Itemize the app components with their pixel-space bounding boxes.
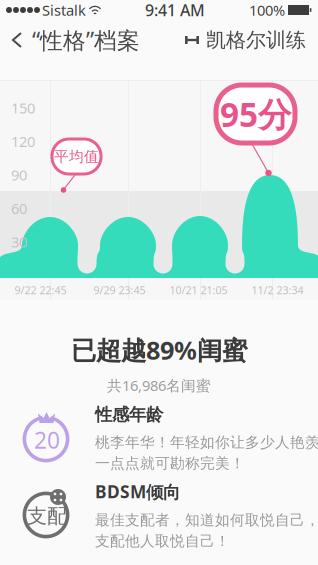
button[interactable]: 支配: [0, 480, 318, 556]
staticText: 120: [11, 131, 35, 151]
staticText: 性感年龄: [95, 404, 163, 425]
staticText: 支配: [27, 504, 67, 528]
staticText: 9/22 22:45: [14, 283, 66, 297]
staticText: 支配他人取悦自己！: [95, 532, 230, 550]
staticText: 最佳支配者，知道如何取悦自己，更深谙: [95, 511, 318, 529]
staticText: 已超越89%闺蜜: [71, 333, 247, 367]
button[interactable]: 凯格尔训练: [185, 18, 318, 62]
staticText: 20: [34, 425, 60, 455]
staticText: 10/21 21:05: [169, 283, 227, 297]
staticText: 9:41 AM: [145, 0, 205, 21]
button[interactable]: 20: [0, 404, 318, 480]
staticText: 共16,986名闺蜜: [107, 376, 211, 395]
staticText: BDSM倾向: [95, 480, 180, 503]
staticText: 30: [11, 232, 27, 251]
staticText: 100%: [249, 0, 285, 20]
staticText: 95分: [220, 92, 291, 136]
staticText: Sistalk: [42, 0, 86, 20]
button[interactable]: “性格”档案: [0, 15, 140, 65]
staticText: 60: [11, 198, 27, 218]
staticText: 11/2 23:34: [251, 283, 303, 297]
staticText: 凯格尔训练: [206, 28, 306, 52]
staticText: 90: [11, 165, 27, 184]
staticText: 150: [11, 98, 35, 117]
staticText: 9/29 23:45: [93, 283, 145, 297]
staticText: 桃李年华！年轻如你让多少人艳羡，只差: [95, 433, 318, 451]
staticText: 一点点就可勘称完美！: [95, 454, 245, 472]
staticText: 平均值: [54, 147, 99, 165]
staticText: “性格”档案: [32, 25, 140, 55]
